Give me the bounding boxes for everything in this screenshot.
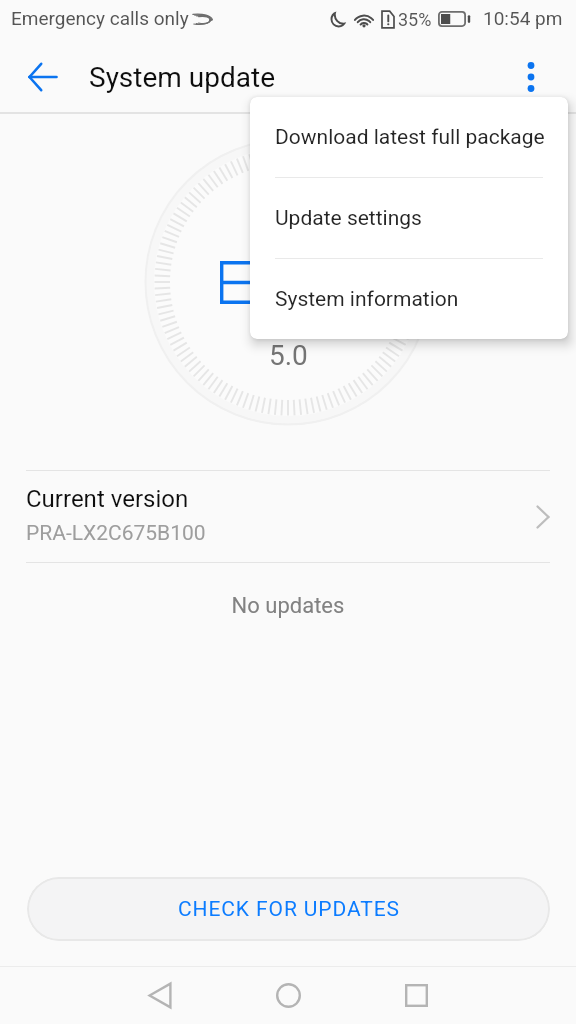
button[interactable]: Current version	[0, 471, 576, 562]
staticText: System update	[89, 61, 276, 94]
button[interactable]: Download latest full package	[250, 97, 568, 177]
staticText: 5.0	[269, 339, 308, 372]
staticText: No updates	[0, 593, 576, 619]
button[interactable]: Back	[19, 53, 67, 101]
button[interactable]: Back	[132, 967, 188, 1023]
button[interactable]: Home	[260, 967, 316, 1023]
staticText: 10:54 pm	[483, 7, 563, 29]
staticText: CHECK FOR UPDATES	[178, 897, 400, 922]
staticText: Download latest full package	[275, 125, 545, 150]
staticText: Update settings	[275, 206, 422, 231]
button[interactable]: More options	[507, 53, 555, 101]
staticText: 35%	[398, 9, 432, 30]
button[interactable]: Recent apps	[388, 967, 444, 1023]
button[interactable]: Update settings	[250, 178, 568, 258]
staticText: Emergency calls only	[11, 7, 189, 29]
staticText: PRA-LX2C675B100	[26, 521, 206, 546]
staticText: Current version	[26, 485, 189, 513]
button[interactable]: System information	[250, 259, 568, 339]
button[interactable]: CHECK FOR UPDATES	[27, 877, 550, 941]
staticText: System information	[275, 287, 459, 312]
